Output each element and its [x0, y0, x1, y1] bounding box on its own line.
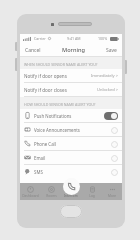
button[interactable]: Email	[20, 151, 122, 164]
button[interactable]: Save	[105, 45, 118, 56]
staticText: Intercom	[64, 194, 78, 198]
staticText: Rooms	[46, 194, 57, 198]
staticText: Log	[89, 194, 95, 198]
button[interactable]: Log	[82, 183, 102, 200]
staticText: 100%	[98, 36, 108, 41]
staticText: Morning	[62, 46, 85, 54]
button[interactable]: Toggle off	[104, 168, 118, 176]
staticText: SMS	[34, 169, 43, 175]
staticText: Save	[106, 47, 117, 54]
button[interactable]: Intercom	[63, 178, 80, 195]
staticText: Email	[34, 155, 46, 161]
button[interactable]: Home	[60, 205, 82, 218]
button[interactable]: SMS	[20, 165, 122, 178]
button[interactable]: Notify if door closes	[20, 83, 122, 96]
staticText: HOW SHOULD SENSOR NAME ALERT YOU?	[24, 102, 96, 107]
staticText: 9:41 AM	[67, 36, 81, 41]
staticText: Cancel	[25, 47, 41, 54]
button[interactable]: Cancel	[24, 45, 42, 56]
staticText: Notify if door closes	[24, 87, 67, 93]
button[interactable]: Toggle off	[104, 140, 118, 148]
staticText: Notify if door opens	[24, 73, 67, 79]
button[interactable]: Push Notifications	[20, 109, 122, 122]
staticText: Immediately >	[91, 73, 118, 78]
staticText: Voice Announcements	[34, 127, 80, 133]
staticText: Dashboard	[22, 194, 39, 198]
staticText: Carrier	[34, 36, 46, 41]
button[interactable]: Rooms	[41, 183, 62, 200]
button[interactable]: Notify if door opens	[20, 69, 122, 82]
button[interactable]: Toggle off	[104, 126, 118, 134]
button[interactable]: Voice Announcements	[20, 123, 122, 136]
staticText: Unlocked >	[97, 87, 118, 92]
button[interactable]: Phone Call	[20, 137, 122, 150]
button[interactable]: Dashboard	[20, 183, 41, 200]
button[interactable]: More	[102, 183, 122, 200]
staticText: Push Notifications	[34, 113, 72, 119]
button[interactable]: Toggle off	[104, 154, 118, 162]
staticText: WHEN SHOULD SENSOR NAME ALERT YOU?	[24, 62, 98, 67]
staticText: Phone Call	[34, 141, 56, 147]
button[interactable]: Toggle on	[104, 112, 118, 120]
staticText: More	[108, 194, 116, 198]
